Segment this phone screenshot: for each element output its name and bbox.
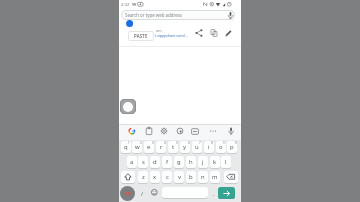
staticText: 3 (152, 141, 154, 145)
button[interactable]: m (210, 171, 220, 183)
button[interactable]: h (186, 156, 196, 168)
button[interactable]: j (198, 156, 208, 168)
button[interactable]: b (186, 171, 196, 183)
staticText: e (147, 143, 151, 151)
button[interactable] (225, 29, 233, 37)
staticText: 7 (199, 141, 201, 145)
staticText: m (212, 173, 218, 181)
staticText: d (153, 158, 157, 166)
button[interactable] (224, 171, 238, 183)
staticText: 4 (164, 141, 166, 145)
staticText: h (189, 158, 193, 166)
button[interactable]: t (168, 141, 178, 153)
button[interactable] (121, 171, 135, 183)
button[interactable]: u (192, 141, 202, 153)
staticText: i (208, 143, 210, 151)
staticText: g (177, 158, 181, 166)
staticText: u (195, 143, 199, 151)
button[interactable]: c (162, 171, 172, 183)
button[interactable] (160, 127, 168, 135)
staticText: 8 (211, 141, 213, 145)
button[interactable]: n (198, 171, 208, 183)
button[interactable] (209, 127, 217, 135)
staticText: l (225, 158, 227, 166)
staticText: om (156, 28, 162, 32)
button[interactable]: ?123 (120, 186, 135, 201)
staticText: r (160, 143, 163, 151)
staticText: Search or type web address (125, 12, 182, 18)
staticText: 0 (235, 141, 237, 145)
staticText: / (141, 190, 143, 197)
staticText: b (189, 173, 193, 181)
button[interactable] (176, 127, 184, 135)
staticText: ?123 (123, 191, 132, 197)
button[interactable] (218, 187, 235, 199)
staticText: 2 (140, 141, 142, 145)
button[interactable]: PASTE (128, 31, 154, 41)
staticText: f (166, 158, 169, 166)
button[interactable]: q (121, 141, 131, 153)
button[interactable]: v (174, 171, 184, 183)
button[interactable]: a (127, 156, 137, 168)
button[interactable] (227, 127, 235, 135)
button[interactable]: d (150, 156, 160, 168)
staticText: j (202, 158, 204, 166)
button[interactable]: z (138, 171, 148, 183)
staticText: t zippyshare.com/... (155, 33, 188, 38)
staticText: c (166, 173, 169, 181)
button[interactable]: f (162, 156, 172, 168)
button[interactable]: y (180, 141, 190, 153)
staticText: 2:32 (121, 1, 130, 7)
button[interactable] (151, 189, 158, 196)
staticText: . (213, 190, 215, 197)
staticText: x (153, 173, 157, 181)
button[interactable]: g (174, 156, 184, 168)
button[interactable] (162, 187, 208, 198)
staticText: 6 (188, 141, 190, 145)
staticText: o (219, 143, 223, 151)
button[interactable] (191, 128, 199, 135)
button[interactable]: / (137, 187, 146, 199)
staticText: q (124, 143, 128, 151)
button[interactable]: p (227, 141, 237, 153)
button[interactable]: l (221, 156, 231, 168)
staticText: a (130, 158, 134, 166)
button[interactable] (195, 29, 203, 37)
button[interactable]: e (144, 141, 154, 153)
staticText: PASTE (134, 33, 148, 39)
button[interactable] (128, 127, 136, 135)
staticText: 5 (176, 141, 178, 145)
staticText: t (172, 143, 175, 151)
button[interactable]: Search or type web address (121, 10, 235, 20)
button[interactable]: x (150, 171, 160, 183)
button[interactable]: k (210, 156, 220, 168)
staticText: v (178, 173, 181, 181)
staticText: p (230, 143, 234, 151)
button[interactable]: w (132, 141, 142, 153)
staticText: s (142, 158, 145, 166)
button[interactable] (210, 29, 218, 37)
button[interactable]: . (210, 187, 217, 199)
button[interactable]: o (216, 141, 226, 153)
button[interactable]: r (156, 141, 166, 153)
staticText: k (213, 158, 217, 166)
button[interactable]: s (138, 156, 148, 168)
staticText: 1 (128, 141, 130, 145)
staticText: n (201, 173, 205, 181)
staticText: y (183, 143, 187, 151)
button[interactable]: i (204, 141, 214, 153)
button[interactable] (145, 127, 153, 135)
staticText: 9 (223, 141, 225, 145)
staticText: w (135, 143, 140, 151)
staticText: z (142, 173, 145, 181)
button[interactable] (120, 99, 136, 114)
